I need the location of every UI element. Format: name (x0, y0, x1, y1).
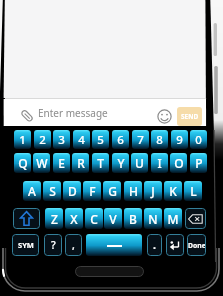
button[interactable] (157, 109, 172, 124)
staticText: 6 (117, 132, 124, 148)
staticText: U (135, 155, 144, 171)
staticText: R (77, 155, 85, 171)
button[interactable]: 6 (112, 130, 129, 149)
button[interactable]: T (92, 153, 109, 173)
button[interactable]: K (164, 181, 182, 201)
staticText: O (174, 155, 184, 171)
staticText: 9 (176, 132, 183, 148)
staticText: SYM (18, 240, 34, 250)
button[interactable]: 9 (171, 130, 188, 149)
staticText: J (151, 183, 155, 199)
staticText: 0 (195, 132, 202, 148)
button[interactable]: G (103, 181, 121, 201)
button[interactable]: A (23, 181, 41, 201)
staticText: 3 (58, 132, 65, 148)
staticText: F (89, 183, 96, 199)
button[interactable]: 5 (92, 130, 109, 149)
button[interactable]: 2 (34, 130, 51, 149)
staticText: X (70, 211, 78, 227)
button[interactable]: 0 (190, 130, 207, 149)
button[interactable]: 4 (73, 130, 90, 149)
button[interactable]: F (83, 181, 101, 201)
staticText: 5 (97, 132, 104, 148)
button[interactable] (166, 234, 184, 256)
staticText: A (28, 183, 36, 199)
button[interactable]: V (104, 208, 122, 229)
button[interactable]: X (65, 208, 83, 229)
staticText: W (36, 155, 48, 171)
staticText: D (68, 183, 77, 199)
staticText: Y (117, 155, 125, 171)
button[interactable]: O (170, 153, 187, 173)
button[interactable]: SEND (177, 107, 202, 126)
staticText: I (157, 155, 162, 171)
button[interactable]: SYM (12, 234, 39, 256)
staticText: C (90, 211, 98, 227)
staticText: 1 (19, 132, 26, 148)
button[interactable]: , (65, 234, 82, 256)
staticText: Z (51, 211, 58, 227)
button[interactable]: Q (14, 153, 31, 173)
button[interactable] (20, 109, 34, 123)
button[interactable]: B (124, 208, 142, 229)
button[interactable]: Done (187, 234, 206, 256)
staticText: T (97, 155, 104, 171)
staticText: N (148, 211, 158, 227)
staticText: ? (51, 238, 56, 252)
button[interactable]: D (63, 181, 81, 201)
button[interactable]: Enter message (38, 99, 148, 127)
button[interactable]: I (151, 153, 168, 173)
button[interactable]: S (43, 181, 61, 201)
button[interactable]: 3 (53, 130, 70, 149)
button[interactable]: ? (44, 234, 62, 256)
button[interactable]: Y (112, 153, 129, 173)
button[interactable] (13, 208, 40, 229)
button[interactable]: P (190, 153, 207, 173)
button[interactable]: W (33, 153, 50, 173)
staticText: B (129, 211, 137, 227)
staticText: SEND (181, 112, 199, 121)
staticText: P (195, 155, 203, 171)
button[interactable]: . (147, 234, 162, 256)
staticText: L (190, 183, 197, 199)
button[interactable]: H (124, 181, 142, 201)
staticText: 4 (78, 132, 85, 148)
button[interactable] (86, 234, 142, 256)
button[interactable]: M (164, 208, 182, 229)
staticText: H (129, 183, 138, 199)
button[interactable]: 7 (132, 130, 149, 149)
staticText: Q (18, 155, 28, 171)
staticText: E (58, 155, 65, 171)
button[interactable]: E (53, 153, 70, 173)
staticText: Done (188, 241, 206, 250)
button[interactable]: Z (45, 208, 63, 229)
button[interactable]: L (184, 181, 202, 201)
button[interactable]: J (144, 181, 162, 201)
button[interactable]: N (144, 208, 162, 229)
staticText: 8 (156, 132, 163, 148)
staticText: 2 (39, 132, 46, 148)
staticText: Enter message (38, 106, 108, 120)
button[interactable]: 8 (151, 130, 168, 149)
button[interactable]: C (85, 208, 103, 229)
button[interactable]: R (72, 153, 89, 173)
staticText: . (153, 238, 156, 252)
staticText: K (169, 183, 177, 199)
button[interactable]: 1 (14, 130, 31, 149)
staticText: , (72, 238, 75, 252)
button[interactable] (185, 208, 206, 229)
staticText: S (49, 183, 56, 199)
staticText: M (167, 211, 179, 227)
staticText: 7 (137, 132, 144, 148)
staticText: G (108, 183, 117, 199)
button[interactable]: U (131, 153, 148, 173)
staticText: V (109, 211, 117, 227)
